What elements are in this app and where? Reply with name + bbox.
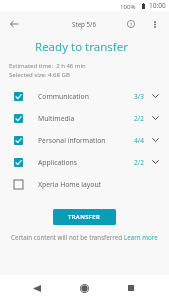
staticText: Ready to transfer <box>0 39 163 55</box>
staticText: 2/2 <box>134 114 144 123</box>
staticText: 2/2 <box>134 158 144 167</box>
button[interactable]: More options <box>143 12 167 36</box>
button[interactable]: Learn more <box>124 233 158 241</box>
staticText: 100% <box>120 2 136 10</box>
staticText: 10:00 <box>149 1 166 10</box>
button[interactable]: Back <box>2 12 26 36</box>
staticText: Selected size: 4.68 GB <box>9 71 70 79</box>
staticText: Xperia Home layout <box>38 180 102 189</box>
staticText: 4/4 <box>134 136 144 145</box>
button[interactable]: TRANSFER <box>53 209 116 225</box>
button[interactable]: Applications <box>0 151 169 173</box>
staticText: 3/3 <box>134 92 144 101</box>
staticText: Applications <box>38 158 78 167</box>
staticText: Estimated time: 2 h 46 min <box>9 62 86 70</box>
staticText: Personal information <box>38 136 106 145</box>
button[interactable]: Help <box>119 12 143 36</box>
button[interactable]: Recents <box>119 276 143 300</box>
button[interactable]: Xperia Home layout <box>0 173 169 195</box>
staticText: ? <box>130 21 133 28</box>
button[interactable]: Personal information <box>0 129 169 151</box>
staticText: Certain content will not be transferred <box>11 233 124 241</box>
button[interactable]: Home <box>72 276 96 300</box>
staticText: Multimedia <box>38 114 75 123</box>
staticText: Communication <box>38 92 89 101</box>
staticText: Step 5/6 <box>72 20 96 28</box>
staticText: TRANSFER <box>68 213 101 221</box>
button[interactable]: Back <box>25 276 49 300</box>
button[interactable]: Communication <box>0 85 169 107</box>
button[interactable]: Multimedia <box>0 107 169 129</box>
